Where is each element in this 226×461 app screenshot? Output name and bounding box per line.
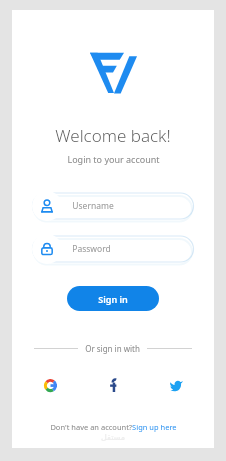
staticText: Username bbox=[72, 200, 114, 212]
staticText: Sign in bbox=[98, 293, 128, 305]
button[interactable]: Password bbox=[32, 234, 194, 264]
button[interactable]: Sign in with Facebook bbox=[95, 370, 131, 400]
staticText: Login to your account bbox=[67, 153, 160, 165]
button[interactable]: Sign in with Google bbox=[32, 370, 68, 400]
button[interactable]: Sign in bbox=[67, 286, 159, 311]
staticText: مستقل bbox=[101, 433, 125, 442]
button[interactable]: Sign in with Twitter bbox=[158, 370, 194, 400]
staticText: Don't have an account?Sign up here bbox=[50, 422, 177, 432]
button[interactable]: Don't have an account?Sign up here bbox=[50, 422, 177, 432]
button[interactable]: Username bbox=[32, 191, 194, 221]
staticText: Or sign in with bbox=[85, 343, 140, 354]
staticText: Welcome back! bbox=[55, 124, 171, 147]
staticText: Password bbox=[72, 243, 111, 255]
